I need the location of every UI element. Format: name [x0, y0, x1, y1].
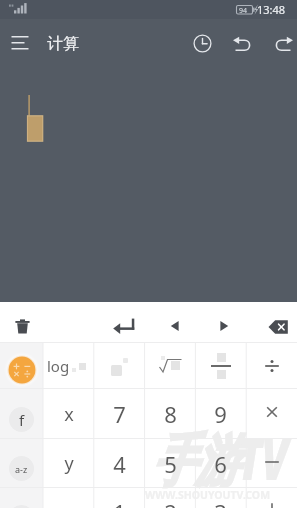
button[interactable]: plus — [246, 488, 297, 508]
button[interactable]: Move left — [162, 313, 188, 339]
button[interactable]: function key — [43, 343, 94, 389]
button[interactable]: 4 — [94, 439, 145, 488]
staticText: 7 — [113, 399, 126, 429]
button[interactable]: 5 — [145, 439, 196, 488]
button[interactable]: function key — [94, 343, 145, 389]
button[interactable]: Clear — [9, 313, 36, 340]
staticText: log — [47, 356, 70, 376]
button[interactable]: 2 — [145, 488, 196, 508]
button[interactable]: x — [43, 389, 94, 439]
staticText: 计算 — [47, 34, 79, 54]
staticText: y — [64, 451, 74, 476]
staticText: WWW.SHOUYOUTV.COM — [145, 488, 271, 502]
staticText: 1 — [113, 497, 126, 508]
button[interactable]: 9 — [195, 389, 246, 439]
staticText: 手游TV — [152, 420, 288, 496]
button[interactable]: function key — [195, 343, 246, 389]
button[interactable]: Redo — [269, 30, 296, 57]
button[interactable]: Letters — [0, 439, 43, 488]
staticText: 2 — [164, 497, 177, 508]
staticText: 13:48 — [257, 2, 286, 17]
staticText: 5 — [164, 449, 177, 479]
button[interactable]: History — [189, 30, 216, 57]
staticText: a-z — [15, 463, 28, 475]
button[interactable]: y — [43, 439, 94, 488]
button[interactable]: Backspace — [264, 313, 292, 341]
button[interactable]: function key — [246, 343, 297, 389]
button[interactable]: Menu — [8, 31, 32, 55]
button[interactable]: function key — [145, 343, 196, 389]
staticText: 6 — [214, 449, 227, 479]
button[interactable]: 1 — [94, 488, 145, 508]
staticText: 4 — [113, 449, 126, 479]
staticText: 94 — [239, 6, 248, 16]
staticText: 3 — [214, 497, 227, 508]
staticText: f — [19, 410, 25, 430]
staticText: 8 — [164, 399, 177, 429]
button[interactable]: 7 — [94, 389, 145, 439]
staticText: 9 — [214, 399, 227, 429]
button[interactable]: Undo — [230, 30, 257, 57]
button[interactable]: minus — [246, 439, 297, 488]
button[interactable]: 8 — [145, 389, 196, 439]
button[interactable]: 3 — [195, 488, 246, 508]
button[interactable]: Move right — [211, 313, 237, 339]
button[interactable]: Functions — [0, 389, 43, 439]
staticText: x — [64, 402, 74, 427]
button[interactable]: Enter — [110, 313, 138, 341]
button[interactable]: Operators — [0, 343, 43, 389]
button[interactable]: 6 — [195, 439, 246, 488]
button[interactable]: times — [246, 389, 297, 439]
